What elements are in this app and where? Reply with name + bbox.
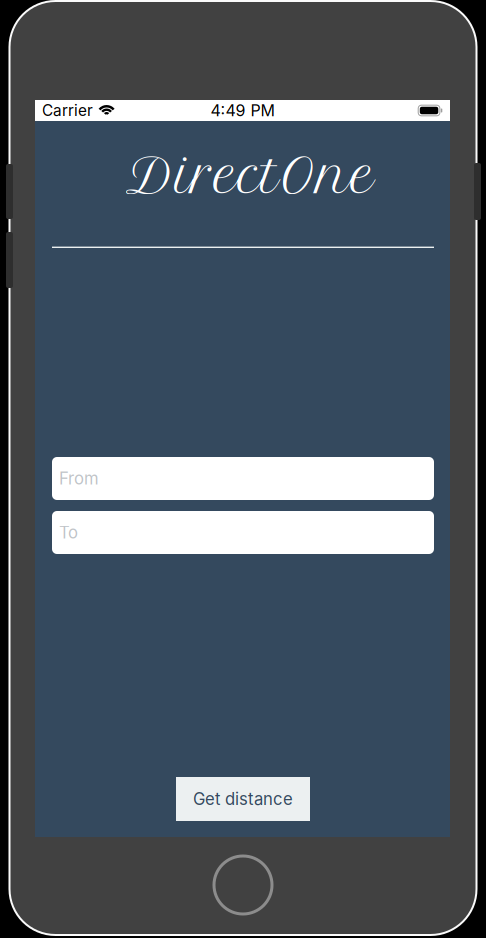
staticText: To [59, 522, 78, 543]
staticText: Carrier [42, 101, 93, 120]
button[interactable]: To [52, 511, 434, 554]
button[interactable]: From [52, 457, 434, 500]
staticText: DirectOne [126, 147, 375, 205]
staticText: Get distance [193, 789, 293, 809]
staticText: 4:49 PM [210, 101, 274, 120]
button[interactable]: Get distance [176, 777, 310, 821]
staticText: From [59, 468, 99, 489]
